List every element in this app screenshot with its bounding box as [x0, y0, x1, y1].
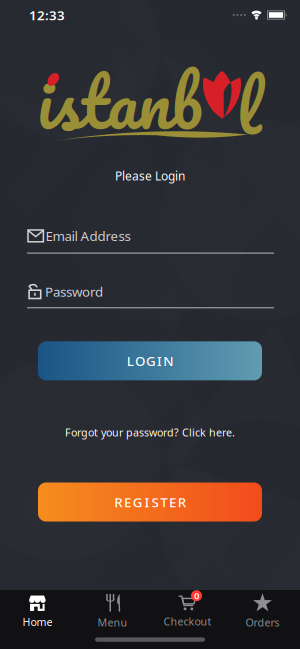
button[interactable]: Password: [0, 283, 300, 308]
staticText: Orders: [245, 615, 279, 629]
button[interactable]: REGISTER: [38, 482, 262, 521]
staticText: LOGIN: [127, 352, 173, 370]
staticText: 0: [194, 589, 199, 602]
staticText: Please Login: [115, 168, 185, 184]
staticText: Menu: [97, 615, 127, 629]
staticText: 12:33: [29, 6, 65, 24]
staticText: Email Address: [45, 227, 130, 245]
button[interactable]: Orders: [225, 593, 300, 629]
staticText: Password: [45, 283, 103, 300]
staticText: Home: [22, 615, 52, 629]
staticText: istanb: [37, 42, 203, 160]
button[interactable]: Forgot your password? Click here.: [65, 425, 235, 439]
staticText: l: [236, 47, 261, 165]
staticText: Forgot your password? Click here.: [65, 425, 235, 439]
button[interactable]: Email Address: [0, 227, 300, 254]
button[interactable]: Home: [0, 594, 75, 629]
staticText: REGISTER: [114, 493, 186, 511]
button[interactable]: LOGIN: [38, 341, 262, 380]
button[interactable]: Menu: [75, 593, 150, 629]
staticText: Checkout: [163, 614, 211, 628]
button[interactable]: 0: [150, 594, 225, 628]
